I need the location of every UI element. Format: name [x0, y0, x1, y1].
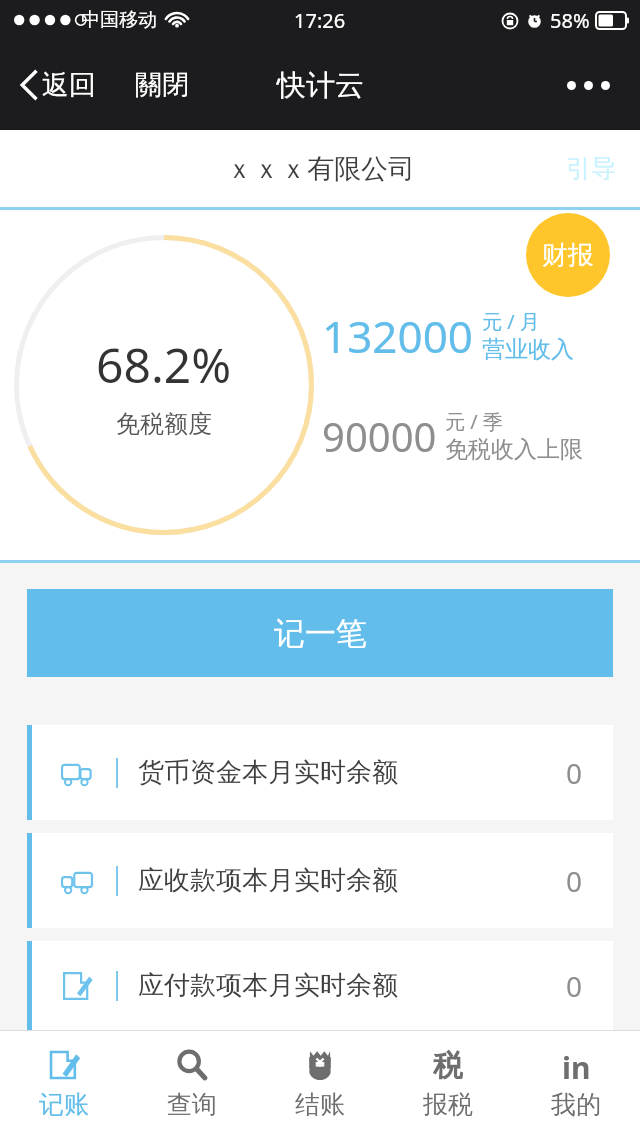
- staticText: 元 / 季: [445, 408, 503, 435]
- button[interactable]: in: [512, 1031, 640, 1136]
- button[interactable]: 關閉: [131, 64, 193, 106]
- staticText: 132000: [322, 306, 474, 366]
- staticText: 应付款项本月实时余额: [138, 969, 398, 1002]
- staticText: ｘｘｘ有限公司: [226, 152, 415, 186]
- staticText: 58%: [550, 7, 590, 34]
- staticText: 90000: [322, 409, 437, 463]
- staticText: 0: [566, 754, 583, 792]
- staticText: 17:26: [294, 7, 346, 34]
- staticText: 免税额度: [116, 409, 212, 439]
- staticText: 记账: [39, 1089, 89, 1120]
- staticText: 快计云: [277, 67, 364, 104]
- staticText: 返回: [42, 68, 96, 102]
- staticText: 我的: [551, 1089, 601, 1120]
- staticText: 报税: [423, 1089, 473, 1120]
- staticText: 营业收入: [482, 335, 574, 364]
- staticText: 税: [433, 1047, 463, 1083]
- staticText: 记一笔: [274, 614, 367, 653]
- staticText: 财报: [542, 239, 594, 272]
- staticText: 应收款项本月实时余额: [138, 864, 398, 897]
- button[interactable]: 结账: [256, 1031, 384, 1136]
- button[interactable]: 返回: [16, 62, 100, 108]
- button[interactable]: 应付款项本月实时余额: [27, 941, 613, 1030]
- staticText: 元 / 月: [482, 308, 540, 335]
- staticText: 中国移动: [81, 8, 157, 32]
- button[interactable]: 记一笔: [27, 589, 613, 677]
- staticText: 结账: [295, 1089, 345, 1120]
- staticText: 0: [566, 862, 583, 900]
- staticText: 查询: [167, 1089, 217, 1120]
- button[interactable]: 应收款项本月实时余额: [27, 833, 613, 928]
- staticText: 68.2%: [96, 332, 232, 397]
- button[interactable]: 税: [384, 1031, 512, 1136]
- staticText: in: [562, 1047, 591, 1083]
- staticText: 免税收入上限: [445, 435, 583, 464]
- button[interactable]: 财报: [526, 213, 610, 297]
- button[interactable]: 查询: [128, 1031, 256, 1136]
- button[interactable]: 货币资金本月实时余额: [27, 725, 613, 820]
- staticText: 货币资金本月实时余额: [138, 756, 398, 789]
- button[interactable]: 引导: [560, 147, 622, 190]
- button[interactable]: 记账: [0, 1031, 128, 1136]
- button[interactable]: More options: [559, 73, 618, 98]
- staticText: 0: [566, 967, 583, 1005]
